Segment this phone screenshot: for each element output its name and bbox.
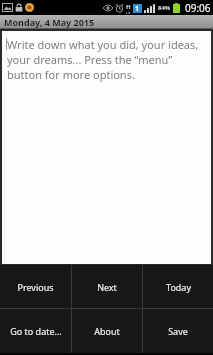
button[interactable]: Write down what you did, your ideas, you…	[2, 31, 211, 264]
staticText: 1	[135, 4, 140, 13]
button[interactable]: About	[72, 309, 142, 353]
staticText: About	[94, 325, 120, 337]
button[interactable]: Go to date...	[0, 309, 71, 353]
staticText: Previous	[17, 281, 54, 293]
button[interactable]: Save	[143, 309, 213, 353]
button[interactable]: Monday, 4 May 2015	[0, 15, 213, 29]
staticText: Today	[166, 281, 191, 293]
staticText: LT	[126, 11, 131, 14]
staticText: Write down what you did, your ideas, you…	[7, 37, 206, 82]
button[interactable]: Today	[143, 265, 213, 308]
staticText: Save	[168, 325, 188, 337]
staticText: H	[126, 3, 131, 11]
staticText: 84%	[158, 4, 171, 12]
staticText: 09:06	[185, 1, 211, 15]
staticText: Monday, 4 May 2015	[4, 16, 95, 28]
button[interactable]: Next	[72, 265, 142, 308]
button[interactable]: Previous	[0, 265, 71, 308]
staticText: Next	[97, 281, 117, 293]
staticText: Go to date...	[10, 325, 62, 337]
